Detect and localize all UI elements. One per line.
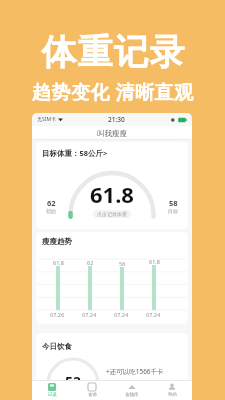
staticText: 62	[87, 259, 94, 266]
staticText: 07.24	[146, 311, 161, 318]
staticText: 瘦瘦趋势	[42, 237, 72, 246]
staticText: 记录	[48, 392, 57, 398]
button[interactable]: 记录	[32, 381, 72, 400]
staticText: 21:30	[108, 115, 125, 124]
staticText: 07.24	[114, 311, 129, 318]
staticText: 61.8	[90, 179, 134, 209]
staticText: +还可以吃1566千卡	[106, 367, 164, 376]
button[interactable]: 食谱	[72, 381, 112, 400]
staticText: 我的	[168, 392, 177, 398]
staticText: 点击记录体重	[97, 211, 127, 217]
staticText: 目标体重：58公斤>	[42, 148, 108, 158]
staticText: 趋势变化 清晰直观	[32, 79, 194, 105]
staticText: 62	[47, 198, 56, 208]
button[interactable]: 食物库	[112, 381, 152, 400]
staticText: 叫我瘦瘦	[97, 129, 127, 138]
staticText: 53	[45, 372, 101, 381]
staticText: 56	[119, 260, 126, 267]
staticText: 07.26	[50, 311, 65, 318]
button[interactable]: 我的	[152, 381, 192, 400]
staticText: 体重记录	[41, 30, 185, 74]
staticText: 58	[169, 198, 178, 208]
button[interactable]: 目标体重：58公斤>	[42, 148, 108, 158]
staticText: 61.8	[149, 258, 160, 265]
staticText: 食物库	[125, 392, 139, 398]
button[interactable]: 点击记录体重	[93, 210, 131, 218]
staticText: 无SIM卡	[37, 116, 56, 123]
staticText: 食谱	[88, 392, 97, 398]
staticText: 初始	[46, 208, 56, 214]
staticText: 61.8	[53, 259, 64, 266]
staticText: 07.24	[82, 311, 97, 318]
staticText: 今日饮食	[42, 342, 72, 351]
staticText: 目标	[168, 208, 178, 214]
